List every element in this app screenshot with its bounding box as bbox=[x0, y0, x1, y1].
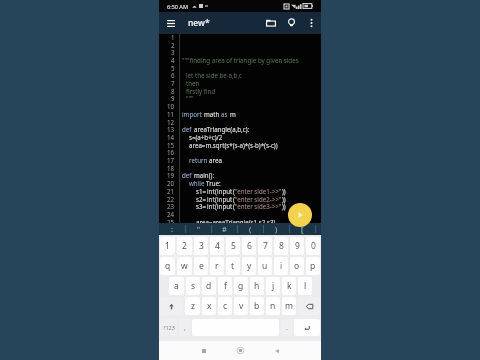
button[interactable]: p bbox=[306, 257, 320, 275]
staticText: w bbox=[181, 260, 188, 272]
staticText: """ bbox=[186, 94, 194, 102]
staticText: while bbox=[189, 179, 206, 187]
button[interactable]: l bbox=[298, 277, 312, 295]
button[interactable]: , bbox=[179, 319, 190, 336]
button[interactable]: a bbox=[169, 277, 184, 295]
button[interactable]: Open file bbox=[261, 12, 281, 34]
staticText: 21 bbox=[167, 187, 175, 195]
button[interactable]: s bbox=[186, 277, 200, 295]
button[interactable]: e bbox=[194, 257, 208, 275]
button[interactable]: 7 bbox=[258, 237, 272, 255]
button[interactable]: 4 bbox=[210, 237, 224, 255]
staticText: 1 bbox=[165, 240, 170, 252]
button[interactable]: ?123 bbox=[160, 319, 177, 336]
staticText: 2 bbox=[182, 240, 187, 252]
button[interactable]: d bbox=[202, 277, 216, 295]
button[interactable]: 1 bbox=[160, 237, 175, 255]
button[interactable]: . bbox=[281, 319, 292, 336]
button[interactable]: Home bbox=[222, 341, 259, 360]
button[interactable]: : bbox=[159, 223, 185, 235]
button[interactable]: t bbox=[226, 257, 240, 275]
button[interactable]: Back bbox=[259, 341, 295, 360]
button[interactable]: # bbox=[212, 223, 237, 235]
button[interactable]: More options bbox=[301, 12, 321, 34]
staticText: 6 bbox=[171, 71, 175, 79]
staticText: 6 bbox=[247, 240, 252, 252]
button[interactable]: v bbox=[234, 297, 248, 315]
button[interactable]: i bbox=[274, 257, 288, 275]
staticText: 13 bbox=[167, 125, 175, 133]
staticText: g bbox=[238, 280, 244, 292]
staticText: y bbox=[247, 260, 252, 272]
button[interactable]: m bbox=[282, 297, 296, 315]
button[interactable]: 9 bbox=[290, 237, 304, 255]
staticText: ( bbox=[215, 202, 217, 210]
button[interactable]: y bbox=[242, 257, 256, 275]
button[interactable]: Navigation menu bbox=[159, 12, 182, 34]
button[interactable]: u bbox=[258, 257, 272, 275]
staticText: ) bbox=[275, 224, 278, 234]
staticText: math bbox=[204, 110, 221, 118]
button[interactable]: Run bbox=[288, 203, 312, 227]
staticText: b bbox=[254, 300, 260, 312]
staticText: main(): bbox=[194, 171, 215, 179]
button[interactable]: Recent apps bbox=[186, 341, 222, 360]
button[interactable]: 5 bbox=[226, 237, 240, 255]
button[interactable]: " bbox=[186, 223, 211, 235]
staticText: 1 bbox=[171, 33, 175, 41]
staticText: )) bbox=[282, 202, 286, 210]
button[interactable]: j bbox=[266, 277, 280, 295]
button[interactable]: x bbox=[202, 297, 216, 315]
button[interactable]: w bbox=[177, 257, 192, 275]
button[interactable]: 3 bbox=[194, 237, 208, 255]
button[interactable]: o bbox=[290, 257, 304, 275]
staticText: 5 bbox=[231, 240, 236, 252]
button[interactable]: Backspace bbox=[298, 297, 320, 315]
staticText: int bbox=[207, 187, 215, 195]
button[interactable]: Shift bbox=[160, 297, 183, 315]
button[interactable]: Enter bbox=[294, 319, 320, 336]
button[interactable]: q bbox=[160, 257, 175, 275]
staticText: x bbox=[207, 300, 212, 312]
button[interactable]: Hints bbox=[281, 12, 301, 34]
staticText: int bbox=[207, 195, 215, 203]
button[interactable]: f bbox=[218, 277, 232, 295]
staticText: ?123 bbox=[163, 324, 175, 331]
button[interactable]: c bbox=[218, 297, 232, 315]
button[interactable]: 0 bbox=[306, 237, 320, 255]
staticText: 12 bbox=[167, 118, 175, 126]
staticText: h bbox=[254, 280, 260, 292]
button[interactable]: z bbox=[185, 297, 200, 315]
staticText: 10 bbox=[167, 102, 175, 110]
staticText: m bbox=[230, 110, 236, 118]
staticText: ( bbox=[233, 202, 235, 210]
button[interactable]: g bbox=[234, 277, 248, 295]
button[interactable]: b bbox=[250, 297, 264, 315]
staticText: n bbox=[270, 300, 276, 312]
button[interactable]: n bbox=[266, 297, 280, 315]
button[interactable]: ( bbox=[238, 223, 263, 235]
staticText: , bbox=[184, 323, 186, 333]
button[interactable]: k bbox=[282, 277, 296, 295]
staticText: def bbox=[182, 171, 194, 179]
staticText: p bbox=[310, 260, 316, 272]
staticText: """finding area of triangle by given sid… bbox=[182, 56, 299, 64]
staticText: s bbox=[191, 280, 196, 292]
staticText: ( bbox=[215, 187, 217, 195]
staticText: "enter side1->>" bbox=[235, 187, 282, 195]
staticText: )) bbox=[282, 187, 286, 195]
button[interactable]: ) bbox=[264, 223, 289, 235]
staticText: 7 bbox=[171, 79, 175, 87]
button[interactable]: 2 bbox=[177, 237, 192, 255]
staticText: firstly find bbox=[186, 87, 216, 95]
staticText: 4 bbox=[215, 240, 220, 252]
button[interactable]: r bbox=[210, 257, 224, 275]
button[interactable]: 8 bbox=[274, 237, 288, 255]
button[interactable]: 6 bbox=[242, 237, 256, 255]
staticText: True: bbox=[206, 179, 221, 187]
button[interactable]: h bbox=[250, 277, 264, 295]
staticText: 4 bbox=[171, 56, 175, 64]
button[interactable]: [ bbox=[290, 223, 315, 235]
